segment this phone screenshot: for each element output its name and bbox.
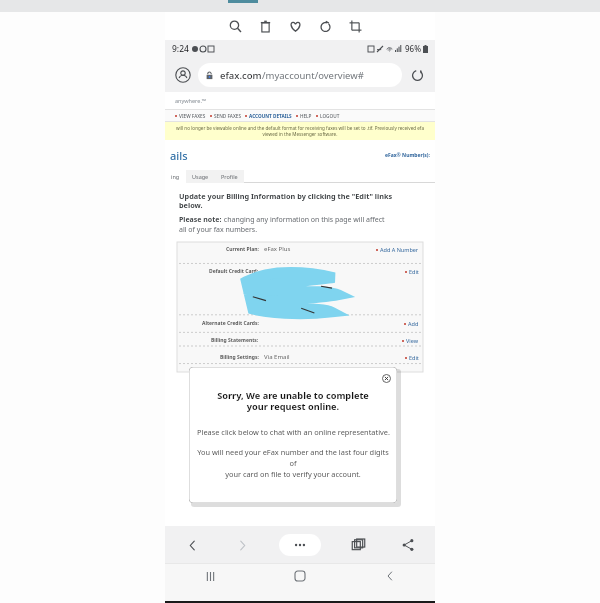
staticText: Update your Billing Information by click… [179,191,393,210]
staticText: Default Credit Card: [209,268,259,275]
staticText: Please note: [179,215,222,225]
staticText: Edit [409,268,419,275]
staticText: /myaccount/overview# [262,69,364,82]
button[interactable]: Tabs [345,532,371,558]
button[interactable]: Profile [215,170,244,183]
button[interactable]: More options [279,534,321,556]
staticText: ails [170,148,188,163]
button[interactable]: Rotate [315,16,335,36]
button[interactable]: Home [289,565,311,587]
button[interactable]: Add [404,320,419,327]
button[interactable]: Usage [186,170,215,183]
button[interactable]: Add A Number [376,246,419,253]
staticText: ing [171,173,180,180]
button[interactable]: Account [173,65,193,85]
button[interactable]: LOGOUT [314,113,342,119]
staticText: Please click below to chat with an onlin… [197,427,390,437]
staticText: Sorry, We are unable to complete your re… [217,389,369,413]
staticText: all of your fax numbers. [179,225,258,235]
staticText: SEND FAXES [214,113,241,119]
staticText: eFax® Number(s): [385,152,430,159]
staticText: Add A Number [380,246,419,253]
staticText: changing any information on this page wi… [222,215,385,225]
staticText: Add [408,320,419,327]
button[interactable]: SEND FAXES [208,113,243,119]
button[interactable]: Back [379,565,401,587]
button[interactable]: Share [395,532,421,558]
staticText: HELP [300,113,312,119]
button[interactable]: VIEW FAXES [173,113,208,119]
staticText: will no longer be viewable online and th… [176,125,424,137]
staticText: Via Email [264,353,290,361]
button[interactable]: Zoom [225,16,245,36]
button[interactable]: efax.com [198,63,402,87]
button[interactable]: Delete [255,16,275,36]
staticText: View [406,337,419,344]
button[interactable]: ACCOUNT DETAILS [243,113,294,119]
button[interactable]: Back [179,532,205,558]
staticText: Billing Statements: [211,337,259,344]
button[interactable]: Edit [405,354,419,361]
button[interactable]: Forward [229,532,255,558]
staticText: anywhere.™ [175,97,207,104]
staticText: Edit [409,354,419,361]
button[interactable]: Reload [407,65,427,85]
staticText: Current Plan: [226,246,259,253]
staticText: You will need your eFax number and the l… [196,447,390,479]
staticText: 9:24 [172,43,189,55]
staticText: LOGOUT [320,113,340,119]
button[interactable]: HELP [294,113,314,119]
button[interactable]: View [402,337,419,344]
button[interactable]: ing [165,170,186,183]
button[interactable]: Crop [345,16,365,36]
button[interactable]: Favorite [285,16,305,36]
staticText: Billing Settings: [220,354,259,361]
staticText: VIEW FAXES [179,113,206,119]
staticText: Profile [221,173,238,180]
button[interactable]: Edit [405,268,419,275]
staticText: Alternate Credit Cards: [202,320,259,327]
button[interactable]: Recents [199,565,221,587]
staticText: Usage [192,173,209,180]
staticText: efax.com [220,69,262,82]
button[interactable]: Close [380,372,392,384]
staticText: ACCOUNT DETAILS [249,113,292,119]
staticText: eFax Plus [264,245,291,253]
staticText: 96% [405,43,421,54]
